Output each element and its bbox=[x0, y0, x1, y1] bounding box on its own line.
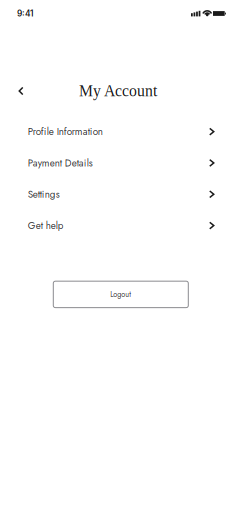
button[interactable]: Settings bbox=[0, 179, 236, 210]
staticText: Get help bbox=[28, 218, 64, 233]
button[interactable]: Profile Information bbox=[0, 116, 236, 147]
staticText: Profile Information bbox=[28, 124, 103, 139]
staticText: Settings bbox=[28, 187, 60, 201]
button[interactable]: Payment Details bbox=[0, 147, 236, 179]
staticText: My Account bbox=[79, 82, 157, 100]
button[interactable]: Back bbox=[10, 78, 32, 104]
staticText: Logout bbox=[110, 289, 131, 300]
button[interactable]: Get help bbox=[0, 210, 236, 241]
staticText: Payment Details bbox=[28, 156, 93, 170]
staticText: 9:41 bbox=[17, 8, 33, 18]
button[interactable]: Logout bbox=[53, 281, 188, 308]
